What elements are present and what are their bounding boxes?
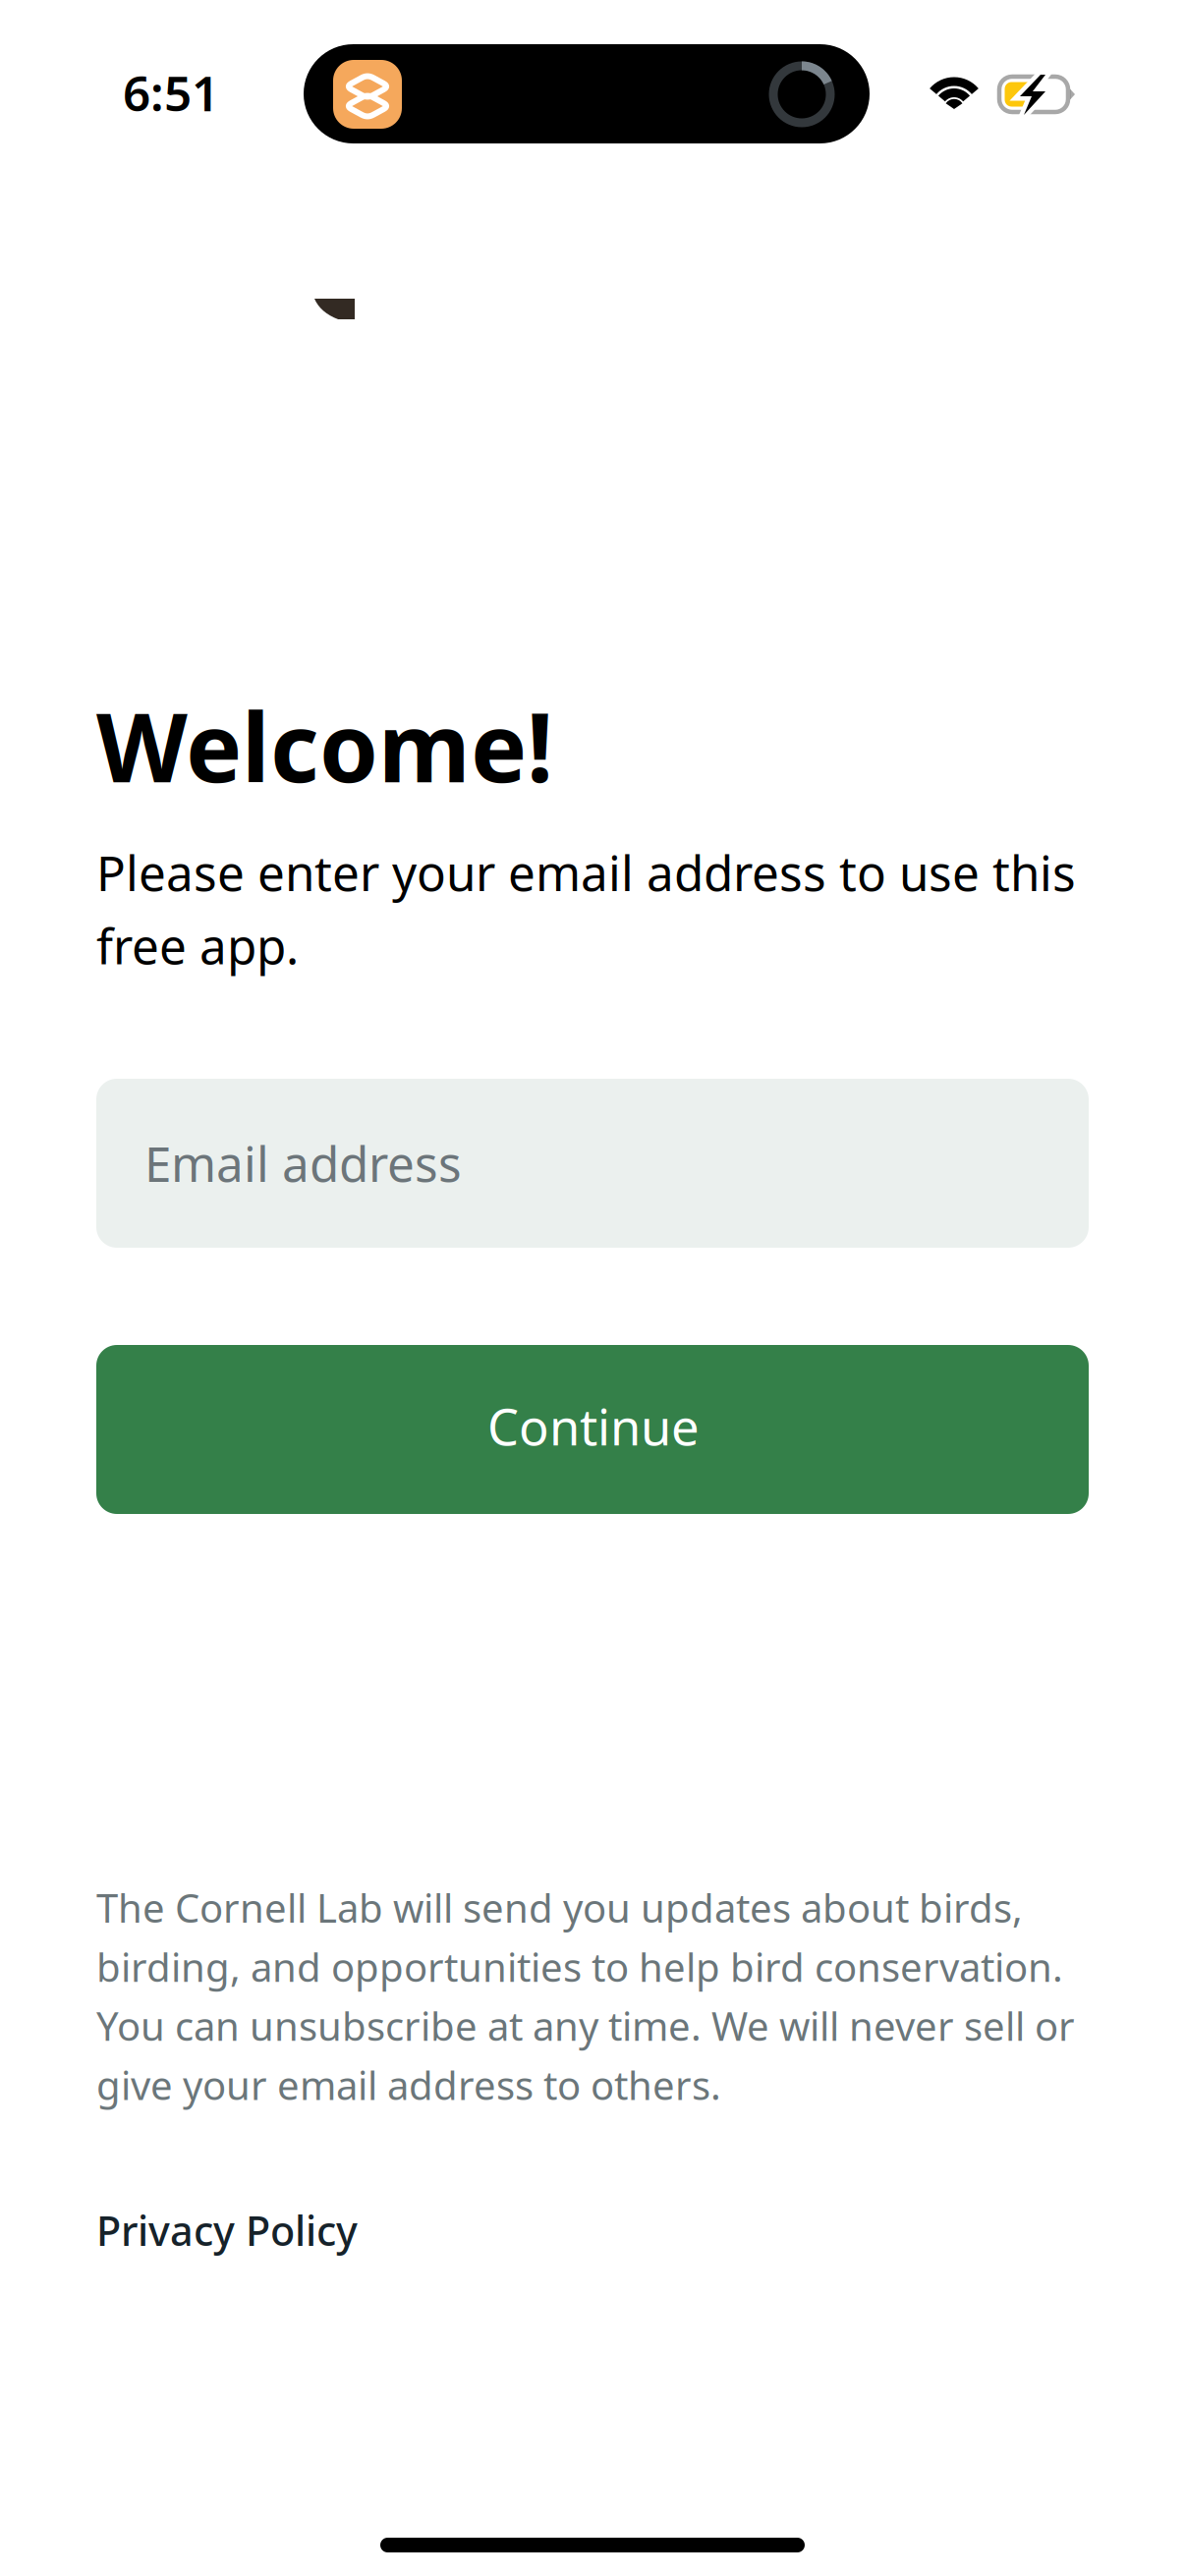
button[interactable]: Email address	[96, 1079, 1089, 1248]
staticText: Privacy Policy	[96, 2203, 358, 2257]
staticText: Please enter your email address to use t…	[96, 840, 1076, 978]
staticText: 6:51	[123, 60, 219, 124]
staticText: Continue	[487, 1393, 700, 1459]
button[interactable]: Continue	[96, 1345, 1089, 1514]
staticText: Email address	[144, 1131, 462, 1195]
staticText: The Cornell Lab will send you updates ab…	[96, 1881, 1075, 2111]
staticText: Welcome!	[96, 683, 553, 808]
button[interactable]: Privacy Policy	[96, 2204, 391, 2257]
